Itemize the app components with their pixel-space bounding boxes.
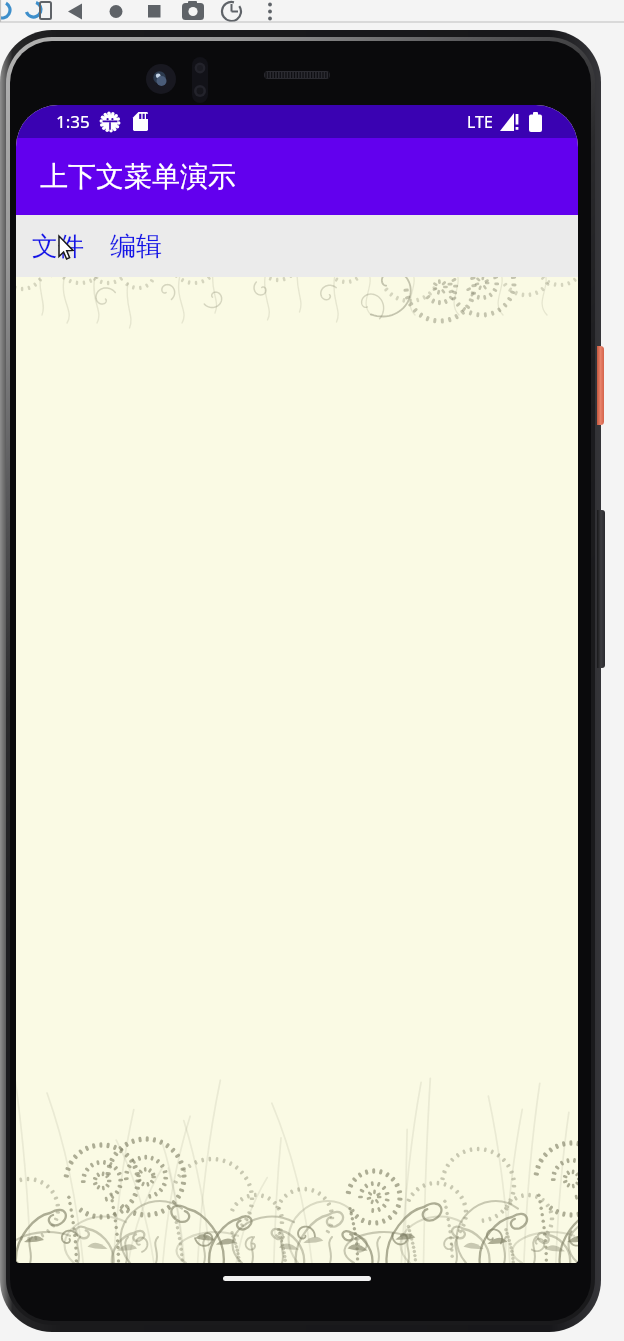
button[interactable]: 编辑: [94, 220, 172, 273]
other: Home: [223, 1276, 371, 1281]
staticText: 1:35: [56, 110, 90, 133]
button[interactable]: [16, 277, 578, 1263]
staticText: 文件: [32, 230, 84, 263]
staticText: 上下文菜单演示: [40, 159, 236, 194]
button[interactable]: 上下文菜单演示: [16, 138, 578, 215]
button[interactable]: 文件: [16, 220, 94, 273]
staticText: LTE: [467, 111, 493, 133]
staticText: 编辑: [110, 230, 162, 263]
